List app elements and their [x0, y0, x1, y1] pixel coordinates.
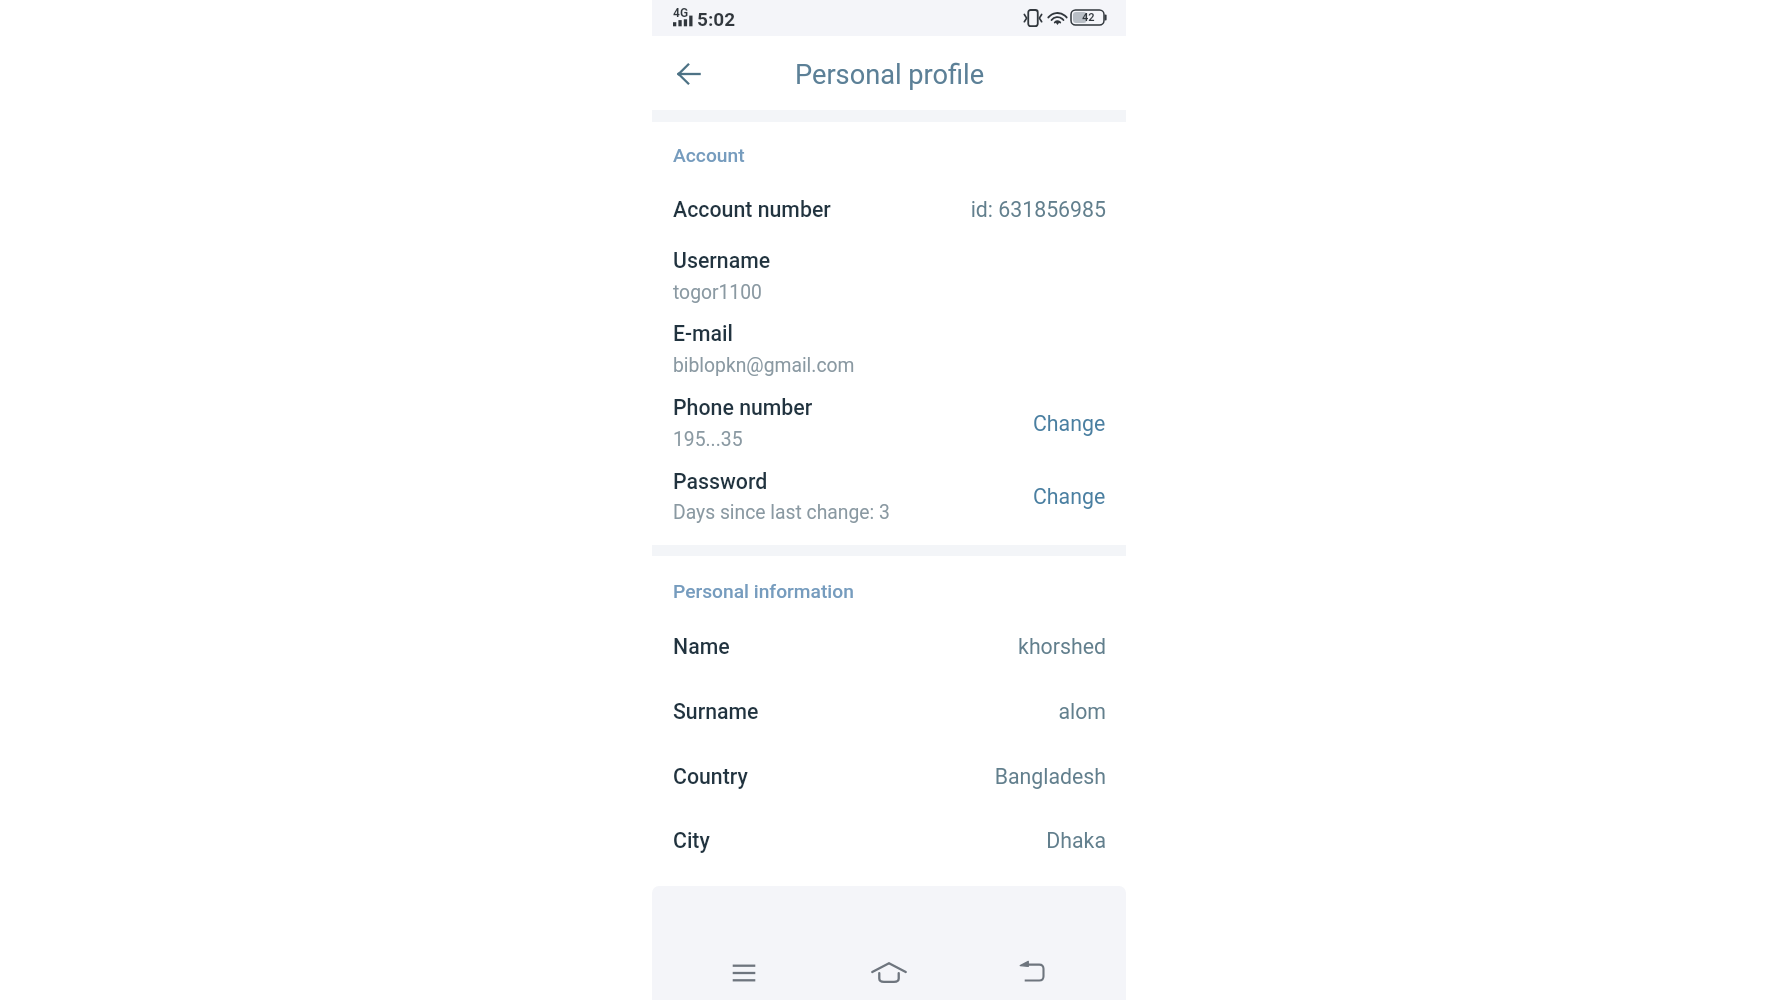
- staticText: id: 631856985: [786, 197, 1106, 222]
- staticText: Account number: [673, 197, 831, 222]
- staticText: Name: [673, 634, 730, 659]
- staticText: Surname: [673, 699, 759, 724]
- staticText: City: [673, 828, 710, 853]
- button[interactable]: Phone number: [652, 389, 1126, 455]
- staticText: 195...35: [673, 428, 743, 451]
- staticText: Phone number: [673, 395, 813, 420]
- staticText: alom: [786, 699, 1106, 724]
- button[interactable]: Surname: [652, 690, 1126, 742]
- staticText: Password: [673, 469, 768, 494]
- staticText: khorshed: [786, 634, 1106, 659]
- staticText: Username: [673, 248, 771, 273]
- staticText: togor1100: [673, 281, 762, 304]
- button[interactable]: Name: [652, 625, 1126, 677]
- button[interactable]: Username: [652, 242, 1126, 308]
- staticText: 4G: [673, 6, 689, 20]
- staticText: 42: [1082, 11, 1095, 24]
- staticText: Dhaka: [786, 828, 1106, 853]
- button[interactable]: City: [652, 819, 1126, 871]
- staticText: Bangladesh: [786, 764, 1106, 789]
- button[interactable]: E-mail: [652, 315, 1126, 381]
- staticText: Account: [673, 144, 745, 167]
- staticText: Change: [1033, 411, 1106, 436]
- button[interactable]: Change: [1022, 403, 1126, 441]
- button[interactable]: Account number: [652, 188, 1126, 238]
- staticText: Change: [1033, 484, 1106, 509]
- staticText: E-mail: [673, 321, 734, 346]
- staticText: Days since last change: 3: [673, 501, 890, 524]
- staticText: Personal information: [673, 580, 854, 603]
- button[interactable]: Back: [665, 50, 713, 98]
- button[interactable]: Password: [652, 463, 1126, 529]
- button[interactable]: Change: [1022, 476, 1126, 514]
- staticText: 5:02: [697, 8, 736, 30]
- staticText: Personal profile: [795, 59, 985, 91]
- button[interactable]: Recent apps: [720, 949, 768, 997]
- staticText: biblopkn@gmail.com: [673, 354, 855, 377]
- staticText: Country: [673, 764, 748, 789]
- button[interactable]: Back: [1008, 948, 1056, 996]
- button[interactable]: Country: [652, 755, 1126, 807]
- button[interactable]: Home: [865, 948, 913, 996]
